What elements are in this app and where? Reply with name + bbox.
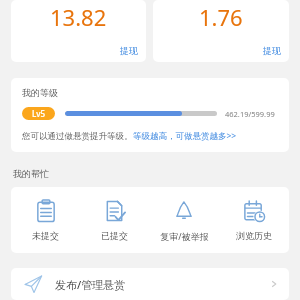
- staticText: 浏览历史: [236, 230, 272, 241]
- other: 浏览历史: [242, 199, 266, 223]
- staticText: 复审/被举报: [160, 230, 209, 242]
- staticText: 未提交: [32, 230, 59, 241]
- button[interactable]: 等级越高，可做悬赏越多>>: [133, 130, 237, 142]
- staticText: 我的等级: [22, 87, 58, 98]
- other: 复审/被举报: [172, 199, 196, 223]
- button[interactable]: 提现: [120, 45, 138, 56]
- button[interactable]: 发布悬赏: [11, 268, 289, 300]
- button[interactable]: 我的等级: [11, 78, 289, 152]
- staticText: 13.82: [50, 2, 107, 32]
- button[interactable]: 已提交: [80, 187, 149, 253]
- staticText: 您可以通过做悬赏提升等级。: [22, 131, 133, 142]
- button[interactable]: 13.82: [11, 0, 146, 62]
- button[interactable]: 未提交: [11, 187, 80, 253]
- other: 发布悬赏: [23, 274, 43, 294]
- staticText: 我的帮忙: [13, 168, 49, 179]
- button[interactable]: 提现: [263, 45, 281, 56]
- button[interactable]: 复审/被举报: [149, 187, 219, 253]
- staticText: 发布/管理悬赏: [55, 277, 126, 292]
- button[interactable]: 1.76: [153, 0, 289, 62]
- staticText: 462.19/599.99: [225, 109, 275, 119]
- staticText: 1.76: [199, 2, 243, 32]
- other: 已提交: [103, 199, 127, 223]
- button[interactable]: 浏览历史: [219, 187, 289, 253]
- other: 未提交: [34, 199, 58, 223]
- staticText: 已提交: [101, 230, 128, 241]
- staticText: Lv5: [32, 108, 46, 119]
